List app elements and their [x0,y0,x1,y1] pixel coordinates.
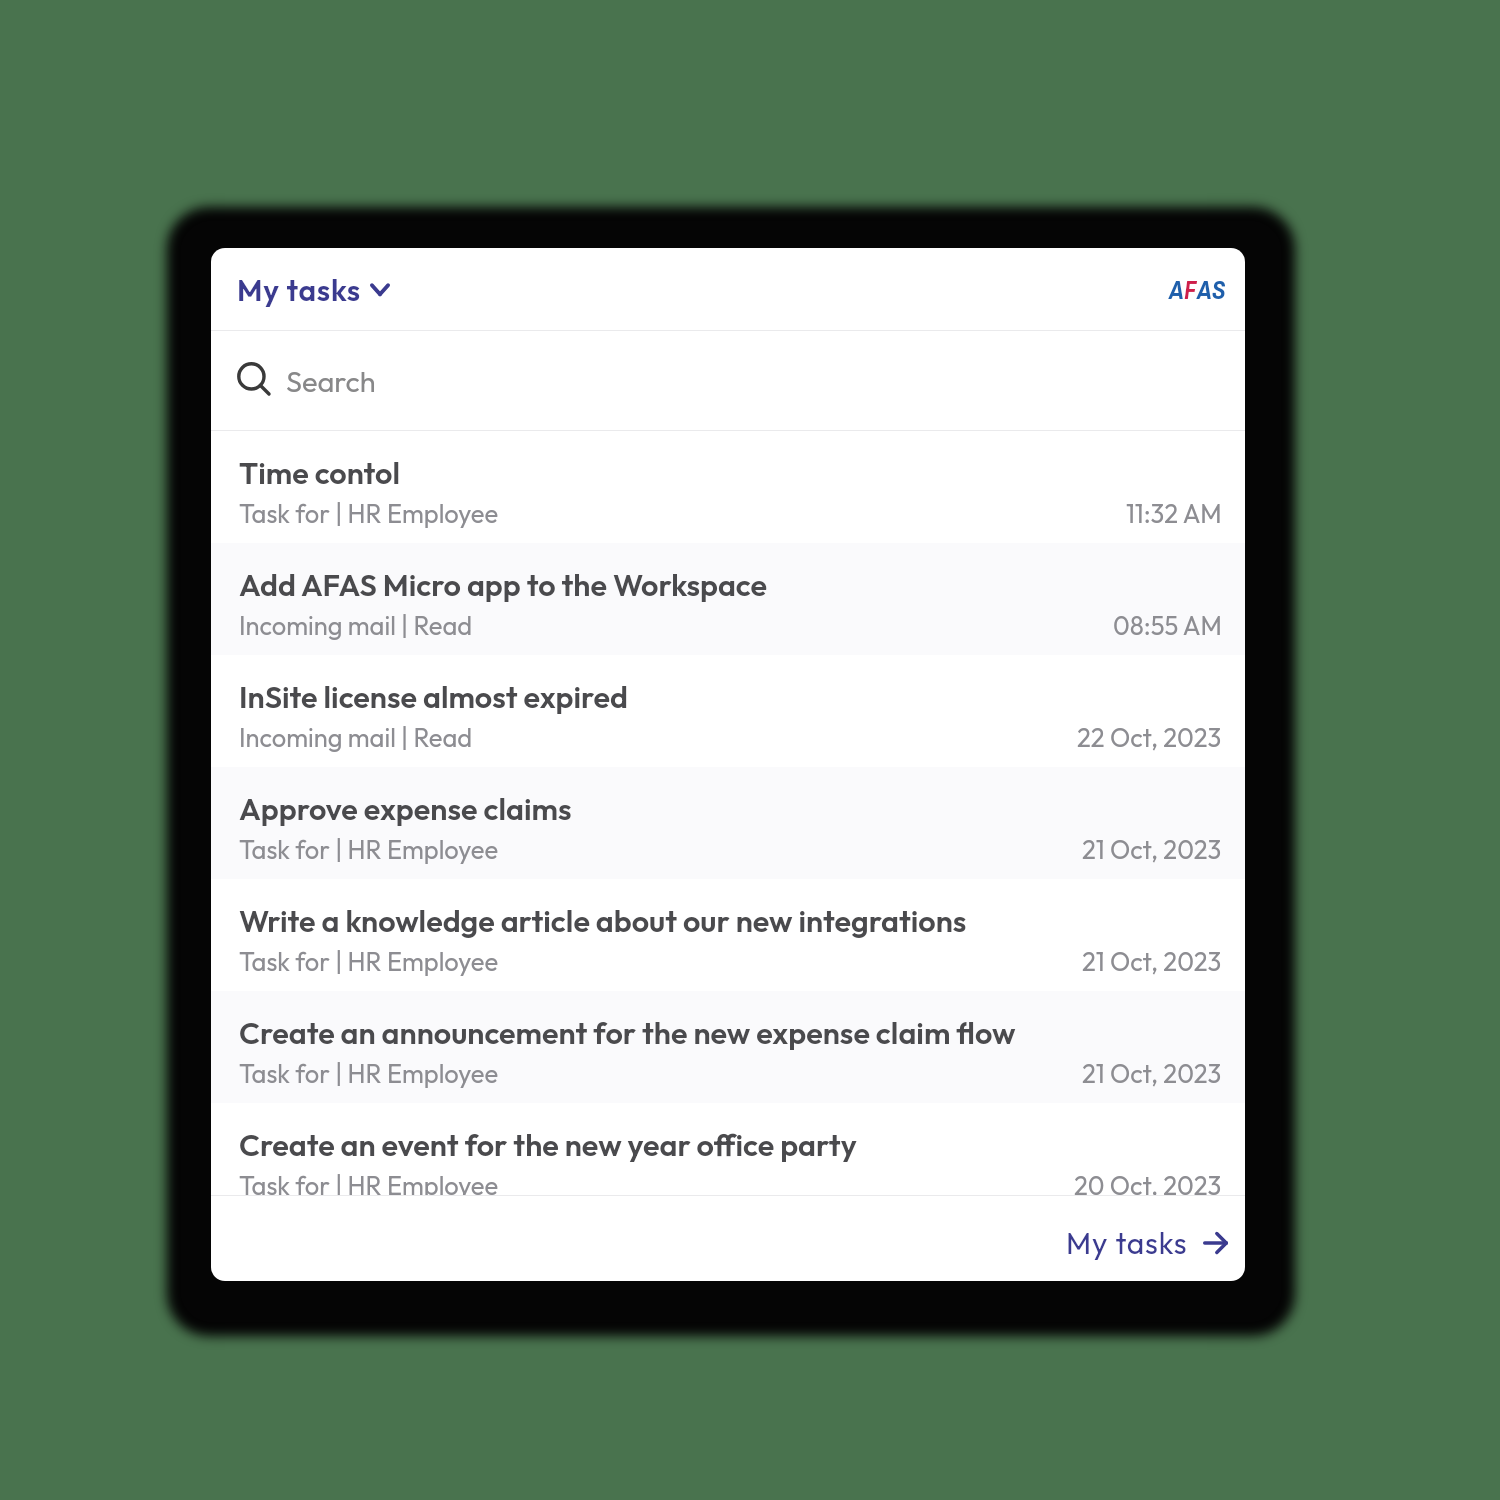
button[interactable]: Add AFAS Micro app to the Workspace [211,543,1245,655]
staticText: A [1169,273,1184,307]
button[interactable]: Create an event for the new year office … [211,1103,1245,1196]
staticText: InSite license almost expired [239,677,628,715]
staticText: My tasks [1066,1224,1188,1262]
staticText: Task for | HR Employee [239,1057,499,1089]
staticText: 21 Oct, 2023 [1082,945,1222,977]
button[interactable]: My tasks, change list [237,248,390,331]
staticText: Task for | HR Employee [239,833,499,865]
staticText: Incoming mail | Read [239,721,473,753]
staticText: Search [286,363,376,400]
button[interactable]: Write a knowledge article about our new … [211,879,1245,991]
staticText: F [1184,273,1197,307]
staticText: Task for | HR Employee [239,497,499,529]
staticText: Create an announcement for the new expen… [239,1013,1016,1051]
staticText: 20 Oct, 2023 [1074,1169,1222,1196]
button[interactable]: Time contol [211,431,1245,543]
staticText: Write a knowledge article about our new … [239,901,967,939]
staticText: AS [1197,273,1226,307]
staticText: My tasks [237,271,361,309]
staticText: Add AFAS Micro app to the Workspace [239,565,767,603]
button[interactable]: Search [211,331,1245,431]
button[interactable]: Approve expense claims [211,767,1245,879]
staticText: Time contol [239,453,401,491]
staticText: Task for | HR Employee [239,945,499,977]
staticText: Approve expense claims [239,789,572,827]
staticText: 21 Oct, 2023 [1082,1057,1222,1089]
staticText: 11:32 AM [1126,497,1222,529]
staticText: Incoming mail | Read [239,609,473,641]
button[interactable]: AFAS [1169,273,1226,307]
button[interactable]: InSite license almost expired [211,655,1245,767]
button[interactable]: My tasks [1066,1224,1228,1262]
staticText: Task for | HR Employee [239,1169,499,1196]
button[interactable]: Create an announcement for the new expen… [211,991,1245,1103]
staticText: 08:55 AM [1113,609,1222,641]
staticText: Create an event for the new year office … [239,1125,857,1163]
staticText: 21 Oct, 2023 [1082,833,1222,865]
staticText: 22 Oct, 2023 [1077,721,1222,753]
